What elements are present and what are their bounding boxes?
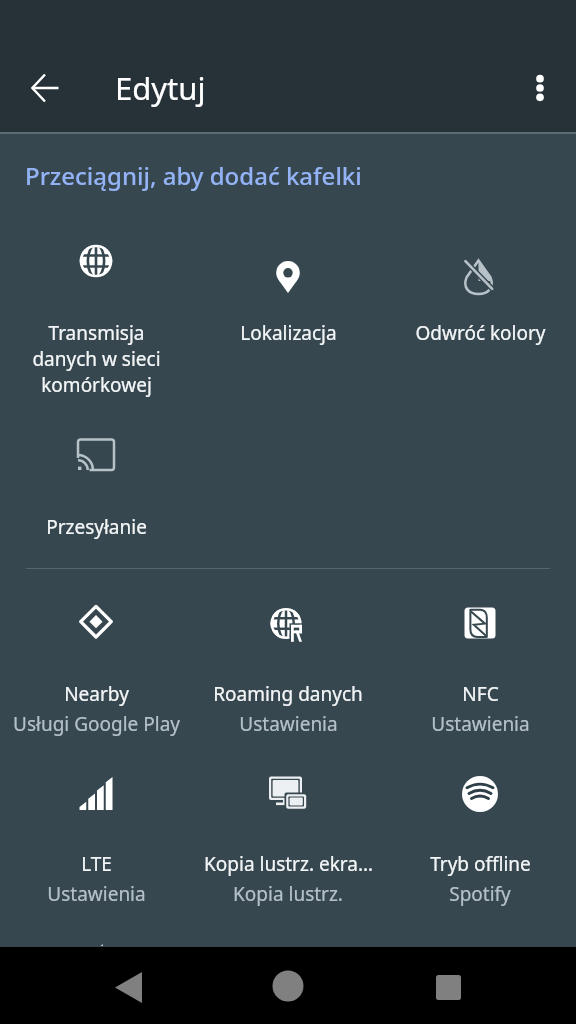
button[interactable]: Transmisja danych w sieci komórkowej: [0, 222, 192, 404]
button[interactable]: Odwróć kolory: [384, 222, 576, 352]
button[interactable]: More options: [512, 60, 568, 116]
button[interactable]: LTE: [0, 753, 192, 913]
button[interactable]: Back: [88, 947, 169, 1024]
staticText: Przesyłanie: [46, 514, 147, 540]
staticText: Tryb offline: [430, 851, 531, 877]
staticText: Edytuj: [115, 67, 206, 109]
staticText: Kopia lustrz. ekra…: [204, 851, 373, 877]
staticText: Usługi Google Play: [13, 711, 180, 737]
staticText: Roaming danych: [213, 681, 363, 707]
staticText: NFC: [462, 681, 499, 707]
staticText: Nearby: [64, 681, 129, 707]
button[interactable]: Lokalizacja: [192, 222, 384, 352]
staticText: Lokalizacja: [240, 320, 337, 346]
button[interactable]: Kopia lustrz. ekra…: [192, 753, 384, 913]
staticText: Ustawienia: [431, 711, 530, 737]
button[interactable]: Tryb offline: [384, 753, 576, 913]
button[interactable]: NFC: [384, 583, 576, 743]
button[interactable]: Home: [247, 947, 328, 1024]
staticText: Odwróć kolory: [415, 320, 546, 346]
button[interactable]: Roaming danych: [192, 583, 384, 743]
button[interactable]: Back: [17, 60, 73, 116]
button[interactable]: Przesyłanie: [0, 416, 192, 546]
staticText: Ustawienia: [239, 711, 338, 737]
staticText: Przeciągnij, aby dodać kafelki: [25, 159, 362, 192]
staticText: Spotify: [449, 881, 511, 907]
staticText: Transmisja danych w sieci komórkowej: [32, 320, 161, 398]
staticText: Kopia lustrz.: [233, 881, 343, 907]
button[interactable]: Recent apps: [408, 947, 489, 1024]
button[interactable]: Nearby: [0, 583, 192, 743]
staticText: Ustawienia: [47, 881, 146, 907]
staticText: LTE: [81, 851, 112, 877]
